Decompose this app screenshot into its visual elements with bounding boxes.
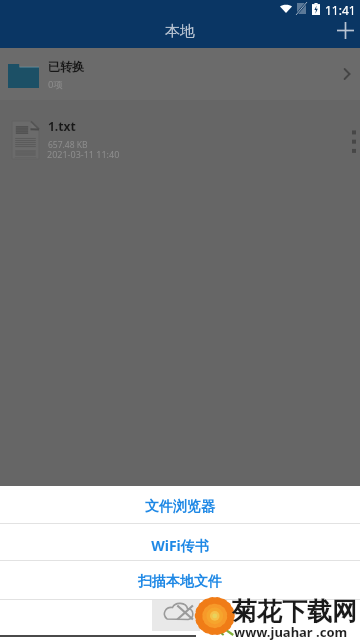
staticText: 1.txt <box>48 118 76 134</box>
button[interactable] <box>0 600 360 640</box>
other: Open folder <box>341 68 353 80</box>
button[interactable]: Add <box>333 18 357 42</box>
staticText: 11:41 <box>325 2 356 18</box>
button[interactable]: 扫描本地文件 <box>0 561 360 599</box>
staticText: 0项 <box>48 78 63 91</box>
staticText: 已转换 <box>48 59 84 74</box>
staticText: 本地 <box>165 22 195 41</box>
button[interactable]: 1.txt <box>0 100 360 172</box>
staticText: www.juahar .com <box>234 623 348 640</box>
button[interactable]: 已转换 <box>0 48 360 100</box>
staticText: 2021-03-11 11:40 <box>47 148 120 160</box>
button[interactable]: 文件浏览器 <box>0 486 360 523</box>
button[interactable]: More options <box>348 126 360 154</box>
staticText: 文件浏览器 <box>145 498 215 516</box>
button[interactable]: WiFi传书 <box>0 524 360 560</box>
staticText: WiFi传书 <box>151 536 209 555</box>
staticText: 菊花下载网 <box>232 596 357 627</box>
staticText: 扫描本地文件 <box>138 573 222 591</box>
staticText: 657.48 KB <box>48 139 88 151</box>
